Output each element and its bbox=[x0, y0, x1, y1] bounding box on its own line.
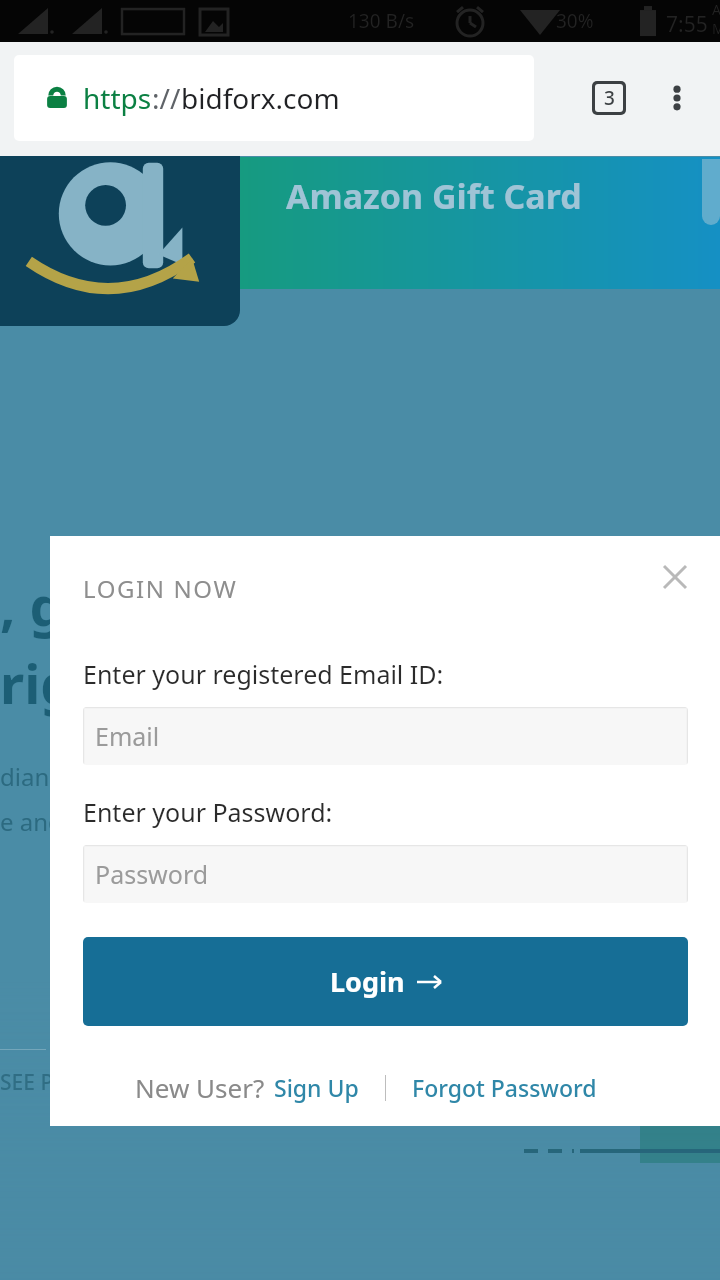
button[interactable]: Password bbox=[83, 845, 688, 903]
staticText: Amazon Gift Card bbox=[286, 173, 582, 219]
staticText: rig bbox=[0, 646, 75, 720]
staticText: New User? bbox=[135, 1070, 265, 1105]
staticText: dian bbox=[0, 760, 50, 793]
staticText: SEE P bbox=[0, 1068, 54, 1097]
button[interactable]: Tabs bbox=[566, 55, 652, 141]
button[interactable]: More options bbox=[634, 55, 720, 141]
staticText: 130 B/s bbox=[348, 8, 415, 34]
staticText: :// bbox=[152, 79, 181, 117]
button[interactable]: Sign Up bbox=[274, 1072, 359, 1103]
button[interactable]: https bbox=[14, 55, 534, 141]
staticText: e and bbox=[0, 805, 63, 838]
button[interactable]: Email bbox=[83, 707, 688, 765]
staticText: 3 bbox=[604, 85, 615, 111]
staticText: Sign Up bbox=[274, 1072, 359, 1103]
staticText: Email bbox=[95, 719, 160, 753]
staticText: LOGIN NOW bbox=[83, 572, 238, 605]
staticText: Forgot Password bbox=[412, 1072, 597, 1103]
button[interactable]: Login bbox=[83, 937, 688, 1026]
staticText: 30% bbox=[556, 8, 594, 34]
staticText: Login bbox=[330, 963, 405, 1000]
staticText: Password bbox=[95, 857, 209, 891]
staticText: AM bbox=[712, 0, 720, 38]
staticText: 7:55 bbox=[666, 10, 708, 39]
button[interactable]: Close bbox=[648, 550, 702, 604]
staticText: Enter your registered Email ID: bbox=[83, 657, 444, 691]
staticText: , g bbox=[0, 568, 64, 642]
staticText: bidforx.com bbox=[181, 79, 340, 117]
staticText: Enter your Password: bbox=[83, 795, 333, 829]
button[interactable]: Forgot Password bbox=[412, 1072, 597, 1103]
staticText: https bbox=[83, 79, 152, 117]
